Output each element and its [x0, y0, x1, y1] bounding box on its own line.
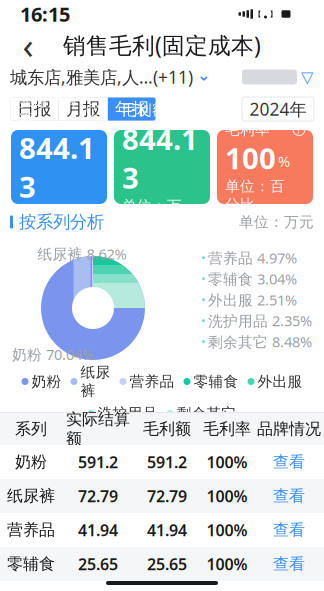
button[interactable]: 纸尿裤: [70, 363, 110, 399]
staticText: 单位：百分比: [225, 177, 285, 213]
staticText: 零辅食: [193, 372, 238, 390]
staticText: 844.13: [122, 119, 198, 197]
staticText: 洗护用品 2.35%: [208, 311, 312, 330]
staticText: ?: [90, 103, 95, 117]
staticText: 奶粉 70.04%: [12, 344, 94, 364]
staticText: 纸尿裤 8.62%: [37, 244, 126, 263]
staticText: 按系列分析: [19, 211, 104, 233]
staticText: 100%: [206, 519, 247, 541]
staticText: 纸尿裤: [80, 363, 110, 399]
staticText: 毛利额: [122, 101, 167, 119]
button[interactable]: 查看: [256, 547, 322, 581]
staticText: 零辅食 3.04%: [208, 269, 297, 288]
staticText: 实际结算额: [66, 409, 130, 449]
button[interactable]: Back: [8, 28, 48, 62]
staticText: 591.2: [147, 451, 187, 473]
button[interactable]: 日报: [10, 97, 58, 121]
staticText: 外出服 2.51%: [208, 290, 297, 309]
staticText: 洗护用品: [97, 404, 157, 422]
button[interactable]: 年报: [108, 97, 156, 121]
staticText: 毛利率: [203, 419, 251, 439]
staticText: 单位：万元: [122, 197, 182, 233]
button[interactable]: 查看: [256, 513, 322, 547]
staticText: 2024年: [249, 97, 306, 120]
staticText: 41.94: [78, 519, 118, 541]
button[interactable]: 零辅食: [183, 372, 238, 390]
staticText: 营养品: [129, 372, 174, 390]
staticText: 剩余其它 8.48%: [208, 332, 312, 351]
staticText: 查看: [273, 452, 305, 472]
staticText: 844.13: [19, 128, 95, 206]
button[interactable]: 毛利额: [114, 130, 210, 204]
staticText: 25.65: [78, 553, 118, 575]
staticText: 单位：万元: [19, 206, 79, 242]
staticText: 系列: [15, 419, 47, 439]
staticText: 月报: [66, 98, 100, 120]
button[interactable]: 2024年: [242, 97, 314, 121]
staticText: 城东店,雅美店,人…(+11): [10, 65, 193, 88]
button[interactable]: 月报: [59, 97, 107, 121]
button[interactable]: 实际结算额: [11, 130, 107, 204]
staticText: 销售毛利(固定成本): [63, 30, 261, 60]
staticText: 25.65: [147, 553, 187, 575]
button[interactable]: 毛利率: [217, 130, 313, 204]
staticText: 品牌情况: [257, 419, 321, 439]
staticText: ⌄: [197, 66, 210, 84]
staticText: 营养品 4.97%: [208, 248, 297, 267]
button[interactable]: 剩余其它: [166, 404, 236, 422]
staticText: 16:15: [20, 1, 70, 27]
staticText: 100%: [206, 553, 247, 575]
staticText: 100%: [206, 451, 247, 473]
button[interactable]: 奶粉: [21, 372, 61, 390]
staticText: 年报: [115, 98, 149, 120]
button[interactable]: 营养品: [119, 372, 174, 390]
staticText: %: [278, 151, 290, 171]
staticText: ‹: [22, 21, 33, 69]
staticText: 纸尿裤: [7, 486, 55, 506]
button[interactable]: 外出服: [247, 372, 302, 390]
staticText: 单位：万元: [239, 213, 314, 231]
staticText: 72.79: [78, 485, 118, 507]
staticText: 100%: [206, 485, 247, 507]
button[interactable]: Filter: [242, 69, 314, 84]
staticText: 奶粉: [15, 452, 47, 472]
staticText: 奶粉: [31, 372, 61, 390]
staticText: 591.2: [78, 451, 118, 473]
staticText: 查看: [273, 520, 305, 540]
button[interactable]: 查看: [256, 445, 322, 479]
staticText: 查看: [273, 554, 305, 574]
staticText: ?: [296, 122, 301, 137]
staticText: 72.79: [147, 485, 187, 507]
staticText: 日报: [17, 98, 51, 120]
staticText: 毛利率: [225, 120, 270, 138]
staticText: 100: [225, 138, 276, 177]
button[interactable]: 洗护用品: [87, 404, 157, 422]
staticText: 实际结算额: [19, 92, 79, 128]
button[interactable]: 城东店,雅美店,人…(+11): [10, 65, 210, 88]
staticText: ▽: [301, 68, 313, 86]
staticText: 营养品: [7, 520, 55, 540]
staticText: 毛利额: [143, 419, 191, 439]
staticText: 零辅食: [7, 554, 55, 574]
staticText: 查看: [273, 486, 305, 506]
button[interactable]: 查看: [256, 479, 322, 513]
staticText: 外出服: [257, 372, 302, 390]
staticText: 剩余其它: [176, 404, 236, 422]
staticText: 41.94: [147, 519, 187, 541]
